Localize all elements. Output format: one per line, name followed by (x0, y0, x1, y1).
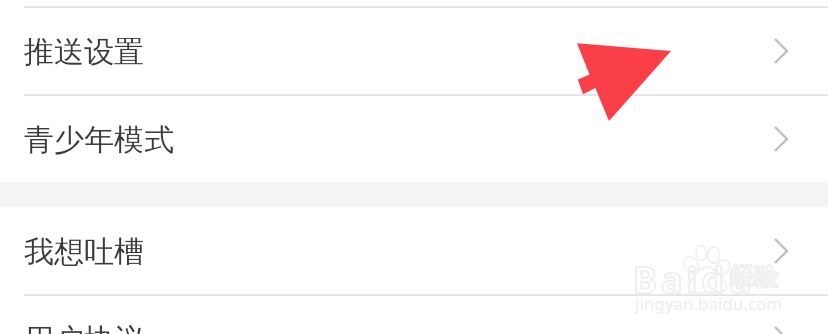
other: Open 青少年模式 (774, 126, 788, 152)
staticText: Baidu (633, 255, 756, 304)
staticText: 青少年模式 (24, 121, 174, 159)
button[interactable]: 我想吐槽 (0, 207, 828, 294)
other: Open 我想吐槽 (774, 238, 788, 264)
button[interactable]: 推送设置 (0, 7, 828, 94)
staticText: 经验 (730, 262, 778, 292)
staticText: 推送设置 (24, 33, 144, 71)
staticText: 我想吐槽 (24, 233, 144, 271)
staticText: jingyan.baidu.com (635, 292, 783, 315)
button[interactable]: 用户协议 (0, 295, 828, 334)
other: Open 推送设置 (774, 38, 788, 64)
other: Open 用户协议 (774, 326, 788, 334)
button[interactable]: 青少年模式 (0, 95, 828, 182)
staticText: 用户协议 (24, 321, 144, 334)
